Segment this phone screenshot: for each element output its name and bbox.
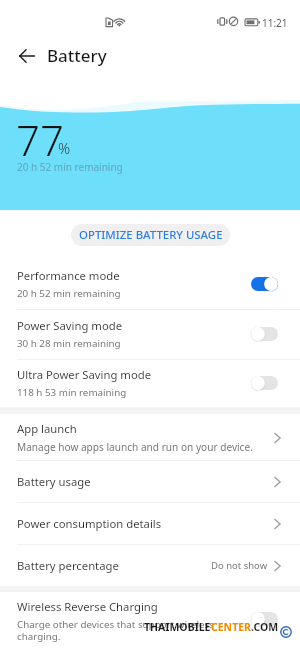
staticText: 30 h 28 min remaining <box>17 337 121 350</box>
staticText: 77 <box>16 111 64 168</box>
staticText: .COM <box>251 620 279 634</box>
staticText: Battery <box>47 44 107 67</box>
staticText: Battery usage <box>17 474 91 489</box>
staticText: Power consumption details <box>17 516 162 531</box>
staticText: App launch <box>17 421 77 436</box>
staticText: 11:21 <box>262 16 288 30</box>
button[interactable]: App launch <box>0 414 300 460</box>
button[interactable]: Back <box>8 37 46 75</box>
staticText: Battery percentage <box>17 558 119 573</box>
button[interactable]: Toggle <box>251 327 278 341</box>
button[interactable]: Power Saving mode <box>0 309 300 359</box>
button[interactable]: Ultra Power Saving mode <box>0 359 300 407</box>
button[interactable]: Wireless Reverse Charging <box>0 592 300 650</box>
button[interactable]: Power consumption details <box>0 502 300 544</box>
staticText: THAIMOBILE <box>144 620 211 634</box>
button[interactable]: Toggle <box>251 277 278 291</box>
staticText: % <box>58 138 71 158</box>
staticText: CENTER <box>211 620 251 634</box>
button[interactable]: Toggle <box>251 376 278 390</box>
button[interactable]: Battery percentage <box>0 544 300 586</box>
button[interactable]: Performance mode <box>0 259 300 309</box>
button[interactable]: Toggle <box>251 612 278 626</box>
button[interactable]: Battery usage <box>0 460 300 502</box>
staticText: Wireless Reverse Charging <box>17 599 158 614</box>
staticText: 20 h 52 min remaining <box>17 160 123 174</box>
staticText: Do not show <box>211 559 268 572</box>
staticText: OPTIMIZE BATTERY USAGE <box>79 227 223 243</box>
staticText: Ultra Power Saving mode <box>17 367 152 382</box>
staticText: Manage how apps launch and run on your d… <box>17 440 253 454</box>
button[interactable]: OPTIMIZE BATTERY USAGE <box>71 224 230 246</box>
staticText: Performance mode <box>17 268 120 283</box>
staticText: 118 h 53 min remaining <box>17 386 127 399</box>
staticText: Power Saving mode <box>17 318 123 333</box>
staticText: 20 h 52 min remaining <box>17 287 121 300</box>
staticText: Charge other devices that support wirele… <box>17 618 214 643</box>
